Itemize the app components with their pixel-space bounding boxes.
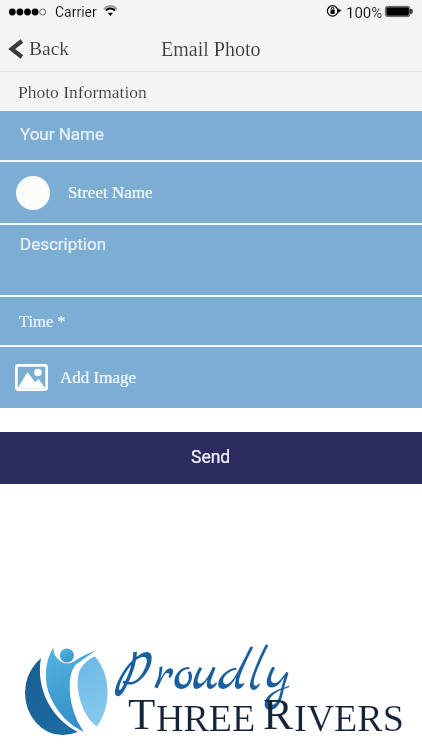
- staticText: Time *: [19, 312, 66, 330]
- button[interactable]: Add Image: [0, 347, 422, 408]
- staticText: T: [128, 689, 156, 739]
- staticText: Back: [29, 38, 70, 60]
- button[interactable]: Time *: [0, 297, 422, 345]
- staticText: Email Photo: [161, 38, 261, 60]
- staticText: Proudly: [116, 640, 291, 711]
- staticText: IVERS: [294, 697, 404, 739]
- staticText: 100%: [346, 4, 383, 22]
- button[interactable]: Street Name: [0, 162, 422, 223]
- button[interactable]: Description: [0, 225, 422, 295]
- button[interactable]: Back: [0, 32, 82, 66]
- staticText: Description: [20, 234, 107, 254]
- staticText: Photo Information: [18, 82, 147, 101]
- staticText: Send: [191, 447, 231, 468]
- staticText: Add Image: [60, 368, 137, 387]
- staticText: Your Name: [20, 124, 105, 144]
- staticText: Carrier: [55, 4, 97, 20]
- staticText: Street Name: [68, 183, 153, 202]
- button[interactable]: Your Name: [0, 111, 422, 160]
- staticText: HREE: [156, 697, 256, 739]
- button[interactable]: Send: [0, 432, 422, 484]
- staticText: R: [263, 689, 294, 739]
